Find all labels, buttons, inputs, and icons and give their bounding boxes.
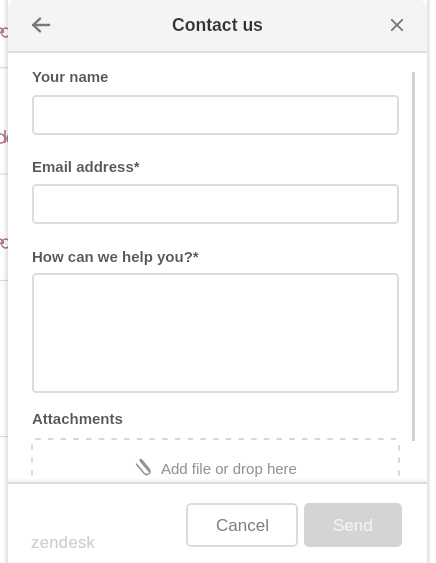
staticText: How can we help you?* <box>32 248 199 265</box>
button[interactable] <box>32 184 399 224</box>
button[interactable]: Back <box>19 3 63 47</box>
button[interactable]: Close <box>379 7 415 43</box>
button[interactable]: Cancel <box>186 503 298 547</box>
staticText: Your name <box>32 68 109 85</box>
staticText: Contact us <box>172 15 263 35</box>
staticText: Add file or drop here <box>161 460 297 477</box>
staticText: Attachments <box>32 410 123 427</box>
button[interactable]: Send <box>304 503 402 547</box>
button[interactable] <box>32 273 399 393</box>
staticText: Send <box>333 516 373 535</box>
button[interactable]: Add file or drop here <box>32 439 399 491</box>
staticText: zendesk <box>31 533 96 551</box>
button[interactable] <box>32 95 399 135</box>
staticText: Cancel <box>216 516 269 535</box>
staticText: Email address* <box>32 158 140 175</box>
